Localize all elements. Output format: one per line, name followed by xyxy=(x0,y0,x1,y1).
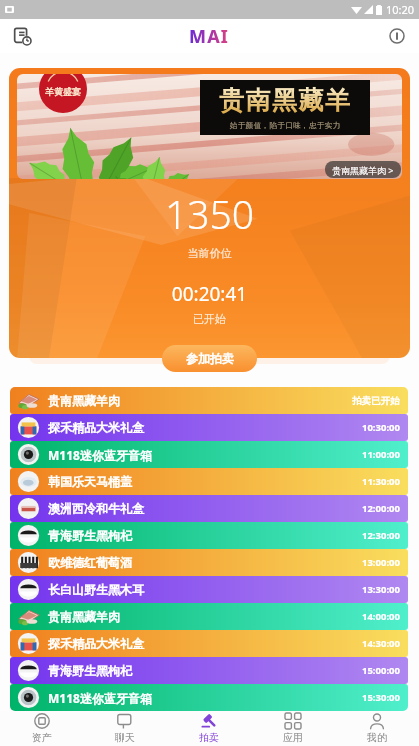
staticText: 欧维德红葡萄酒 xyxy=(48,555,132,570)
staticText: 10:30:00 xyxy=(362,421,400,434)
staticText: 11:30:00 xyxy=(362,475,400,488)
button[interactable]: Info xyxy=(381,20,413,52)
staticText: 贵南黑藏羊 xyxy=(219,85,352,116)
button[interactable]: 青海野生黑枸杞 xyxy=(10,522,408,549)
staticText: 羊黄盛宴 xyxy=(45,86,81,97)
staticText: 1350 xyxy=(9,187,410,240)
staticText: 青海野生黑枸杞 xyxy=(48,663,132,678)
staticText: 已开始 xyxy=(9,312,410,326)
staticText: 参加拍卖 xyxy=(186,351,234,366)
staticText: 贵南黑藏羊肉 xyxy=(48,393,120,408)
staticText: MAI xyxy=(189,24,230,49)
staticText: 00:20:41 xyxy=(9,281,410,307)
staticText: 我的 xyxy=(367,731,387,744)
staticText: 贵南黑藏羊肉 xyxy=(48,609,120,624)
button[interactable]: 贵南黑藏羊肉 > xyxy=(325,161,401,178)
staticText: 13:00:00 xyxy=(362,556,400,569)
staticText: 探禾精品大米礼盒 xyxy=(48,636,144,651)
button[interactable]: M118迷你蓝牙音箱 xyxy=(10,441,408,468)
button[interactable]: 聊天 xyxy=(83,711,167,746)
staticText: M118迷你蓝牙音箱 xyxy=(48,690,152,706)
button[interactable]: 贵南黑藏羊肉 xyxy=(10,603,408,630)
button[interactable]: 资产 xyxy=(0,711,83,746)
button[interactable]: 探禾精品大米礼盒 xyxy=(10,630,408,657)
staticText: 10:20 xyxy=(386,2,415,17)
button[interactable]: 长白山野生黑木耳 xyxy=(10,576,408,603)
staticText: 14:00:00 xyxy=(362,610,400,623)
staticText: M118迷你蓝牙音箱 xyxy=(48,447,152,463)
staticText: 14:30:00 xyxy=(362,637,400,650)
staticText: 15:00:00 xyxy=(362,664,400,677)
button[interactable]: 应用 xyxy=(251,711,335,746)
staticText: 拍卖 xyxy=(199,731,219,744)
button[interactable]: 探禾精品大米礼盒 xyxy=(10,414,408,441)
staticText: 11:00:00 xyxy=(362,448,400,461)
staticText: 资产 xyxy=(32,731,52,744)
staticText: 13:30:00 xyxy=(362,583,400,596)
staticText: 12:00:00 xyxy=(362,502,400,515)
staticText: 聊天 xyxy=(115,731,135,744)
button[interactable]: 我的 xyxy=(335,711,419,746)
staticText: 当前价位 xyxy=(9,246,410,260)
staticText: 青海野生黑枸杞 xyxy=(48,528,132,543)
staticText: 长白山野生黑木耳 xyxy=(48,582,144,597)
button[interactable]: 贵南黑藏羊肉 xyxy=(10,387,408,414)
button[interactable]: 韩国乐天马桶盖 xyxy=(10,468,408,495)
staticText: 韩国乐天马桶盖 xyxy=(48,474,132,489)
button[interactable]: 青海野生黑枸杞 xyxy=(10,657,408,684)
staticText: 应用 xyxy=(283,731,303,744)
button[interactable]: 参加拍卖 xyxy=(162,345,257,372)
button[interactable]: M118迷你蓝牙音箱 xyxy=(10,684,408,711)
staticText: 贵南黑藏羊肉 > xyxy=(332,164,394,176)
staticText: 澳洲西冷和牛礼盒 xyxy=(48,501,144,516)
staticText: 12:30:00 xyxy=(362,529,400,542)
button[interactable]: 欧维德红葡萄酒 xyxy=(10,549,408,576)
staticText: 拍卖已开始 xyxy=(352,395,400,407)
button[interactable]: 澳洲西冷和牛礼盒 xyxy=(10,495,408,522)
staticText: 始于颜值，陷于口味，忠于实力 xyxy=(230,121,341,130)
staticText: 探禾精品大米礼盒 xyxy=(48,420,144,435)
button[interactable]: Auction history xyxy=(6,20,38,52)
staticText: 15:30:00 xyxy=(362,691,400,704)
button[interactable]: 拍卖 xyxy=(167,711,251,746)
button[interactable]: 贵南黑藏羊 xyxy=(9,68,410,358)
